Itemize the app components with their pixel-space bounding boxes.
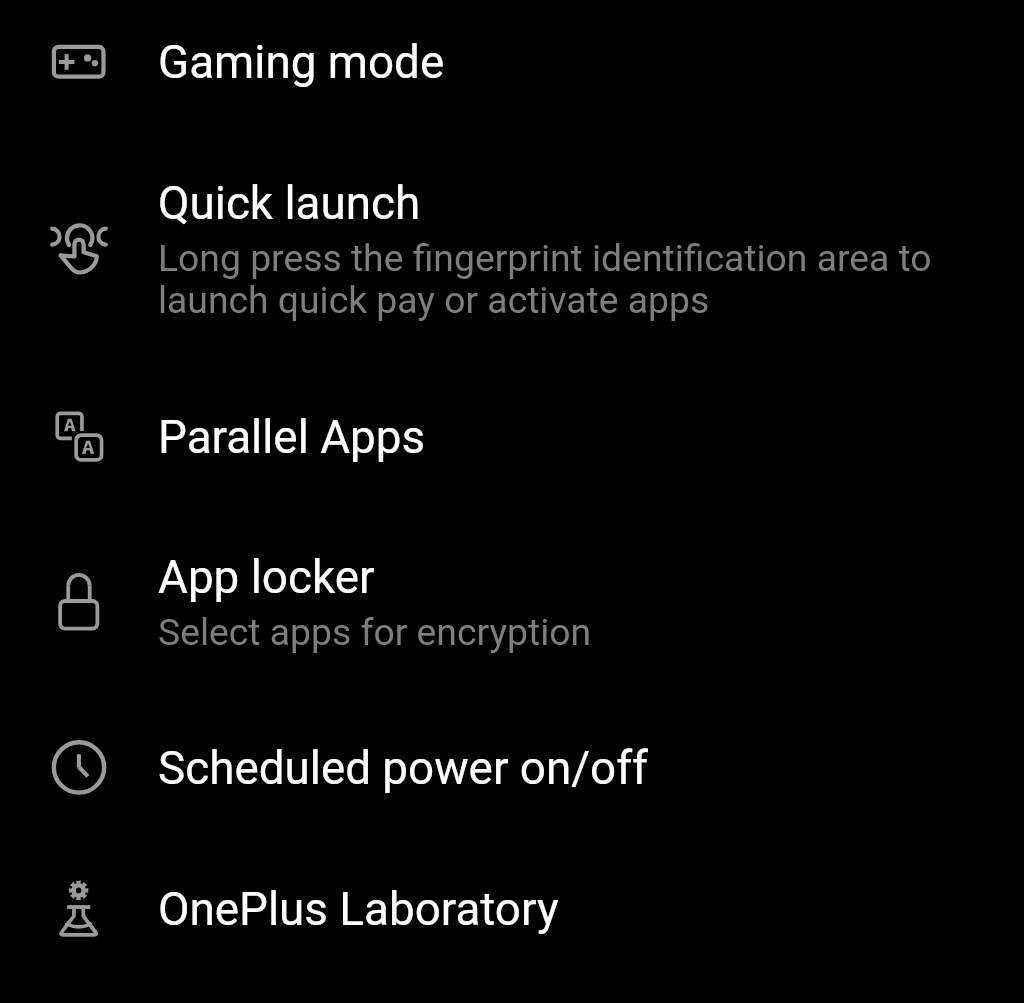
staticText: Quick launch [158,176,421,230]
button[interactable]: Scheduled power on off [0,697,1024,838]
other: Gaming mode [49,32,109,92]
other: OnePlus Laboratory [49,879,109,939]
button[interactable]: Quick launch [0,132,1024,366]
button[interactable]: OnePlus Laboratory [0,838,1024,979]
other: App locker [49,572,109,632]
staticText: Select apps for encryption [158,612,592,654]
other: Scheduled power on off [49,738,109,798]
staticText: App locker [158,550,375,604]
staticText: Long press the fingerprint identificatio… [158,238,960,322]
button[interactable]: Gaming mode [0,0,1024,132]
other: Quick launch [49,219,109,279]
staticText: Gaming mode [158,35,445,89]
staticText: Scheduled power on/off [158,741,649,795]
staticText: Parallel Apps [158,410,426,464]
other: Parallel Apps [49,407,109,467]
staticText: OnePlus Laboratory [158,882,559,936]
button[interactable]: App locker [0,507,1024,697]
button[interactable]: Parallel Apps [0,366,1024,507]
